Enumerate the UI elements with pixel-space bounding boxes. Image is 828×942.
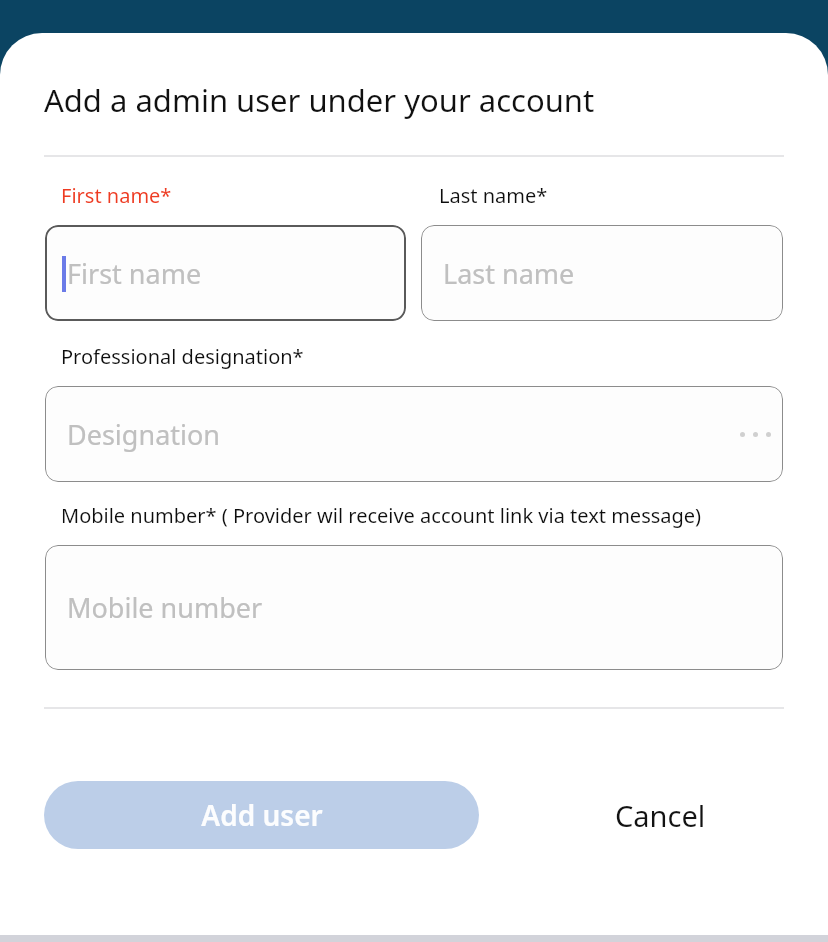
- staticText: Designation: [67, 416, 221, 453]
- staticText: Add user: [201, 796, 323, 834]
- staticText: Mobile number: [67, 589, 263, 626]
- button[interactable]: Designation: [45, 386, 783, 482]
- staticText: First name*: [61, 182, 172, 209]
- button[interactable]: First name: [45, 225, 406, 321]
- staticText: Last name: [443, 255, 575, 292]
- button[interactable]: Mobile number: [45, 545, 783, 670]
- button[interactable]: Add user: [44, 781, 479, 849]
- staticText: First name: [67, 255, 202, 292]
- button[interactable]: Cancel: [615, 781, 706, 849]
- button[interactable]: Last name: [421, 225, 783, 321]
- staticText: Last name*: [439, 182, 548, 209]
- staticText: Cancel: [615, 796, 706, 835]
- staticText: Mobile number* ( Provider wil receive ac…: [61, 502, 702, 529]
- staticText: Professional designation*: [61, 343, 304, 370]
- staticText: Add a admin user under your account: [44, 79, 595, 121]
